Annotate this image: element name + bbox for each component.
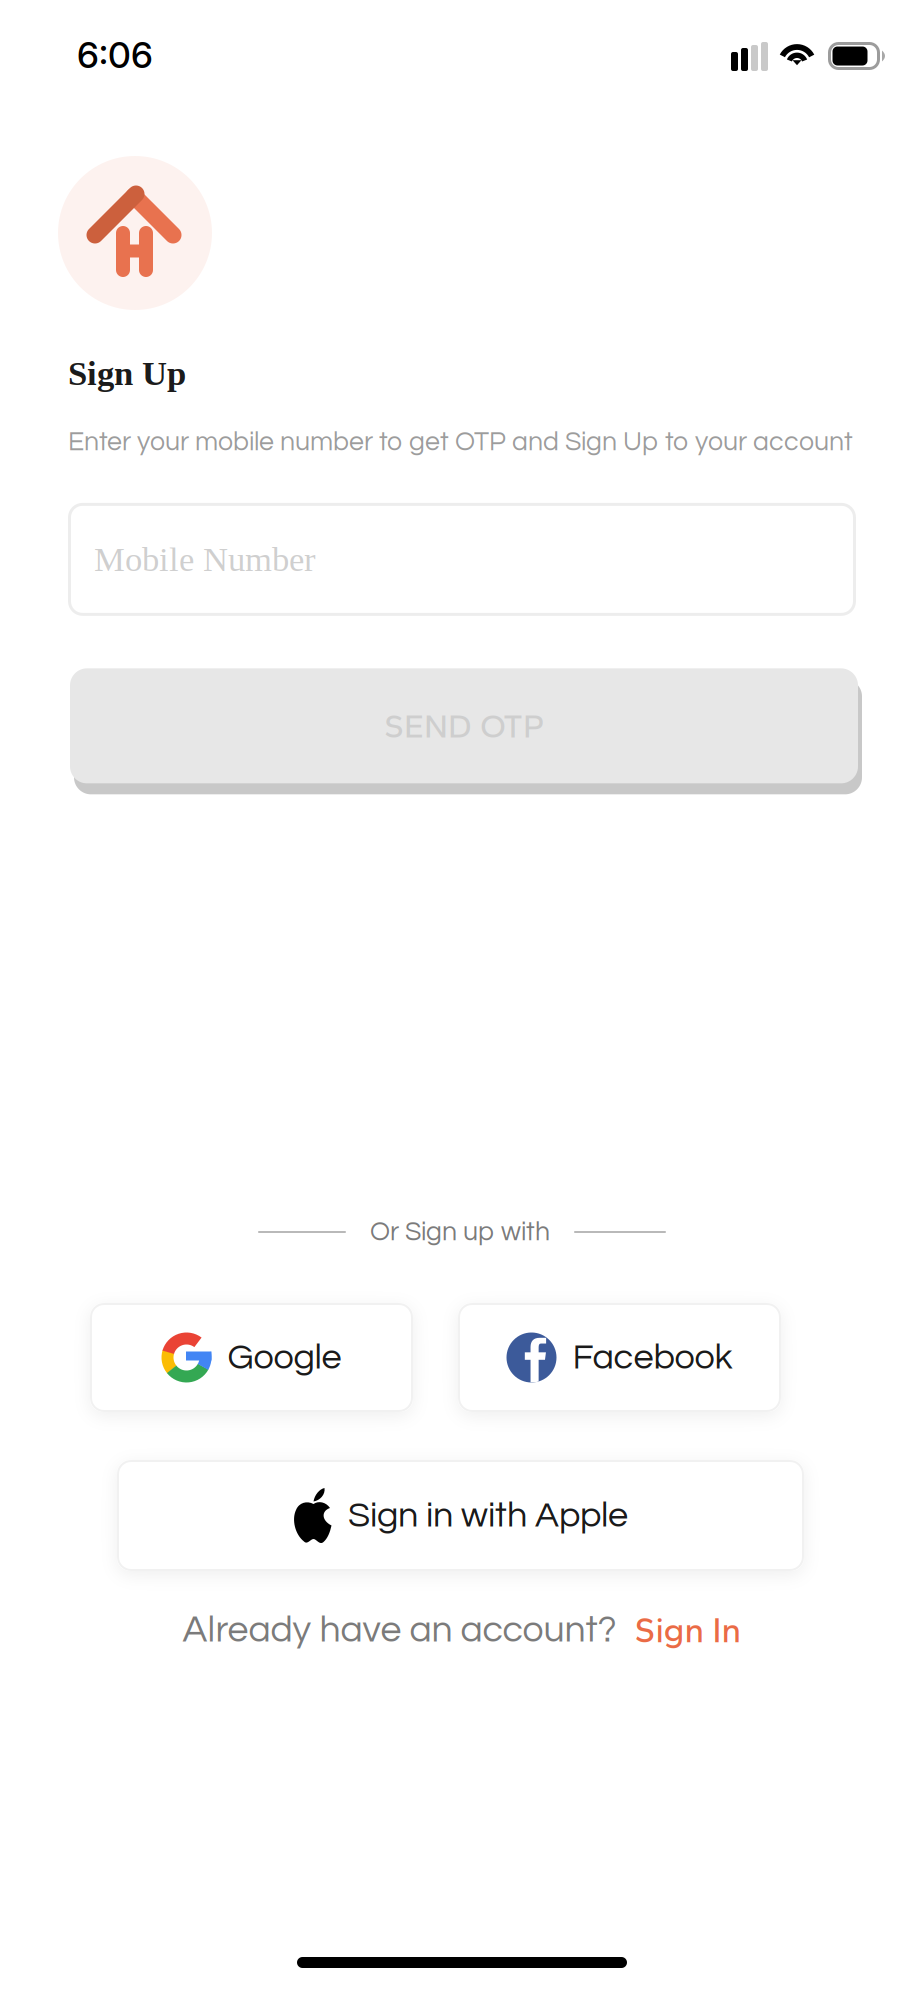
- staticText: Facebook: [572, 1339, 732, 1376]
- button[interactable]: SEND OTP: [68, 663, 860, 789]
- button[interactable]: Already have an account?: [0, 1603, 924, 1657]
- button[interactable]: Google: [90, 1303, 413, 1412]
- staticText: Sign In: [634, 1609, 741, 1651]
- staticText: Enter your mobile number to get OTP and …: [68, 428, 853, 456]
- staticText: SEND OTP: [384, 706, 544, 746]
- staticText: Google: [227, 1339, 341, 1376]
- button[interactable]: Mobile Number: [68, 503, 856, 616]
- staticText: Mobile Number: [94, 540, 316, 579]
- staticText: Already have an account?: [182, 1611, 616, 1649]
- staticText: Or Sign up with: [370, 1218, 550, 1246]
- staticText: Sign Up: [68, 354, 186, 392]
- button[interactable]: Facebook: [458, 1303, 781, 1412]
- staticText: Sign in with Apple: [348, 1497, 628, 1534]
- button[interactable]: Sign in with Apple: [117, 1460, 804, 1571]
- staticText: 6:06: [77, 33, 153, 77]
